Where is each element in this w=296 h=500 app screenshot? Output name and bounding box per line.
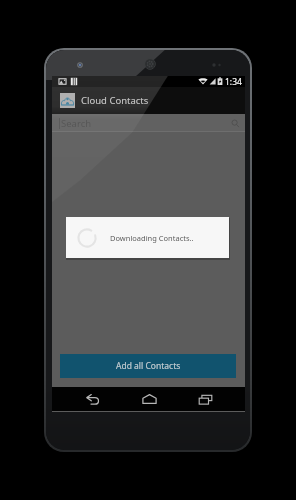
staticText: Search — [61, 117, 92, 130]
button[interactable]: Recent apps — [188, 387, 222, 411]
staticText: Add all Contacts — [116, 360, 181, 372]
button[interactable]: Add all Contacts — [60, 354, 236, 378]
button[interactable]: Back — [75, 387, 109, 411]
staticText: 1:34 — [225, 76, 242, 87]
button[interactable]: Cloud Contacts — [52, 87, 245, 114]
button[interactable]: Search — [52, 114, 245, 132]
staticText: Cloud Contacts — [81, 94, 149, 107]
staticText: Downloading Contacts.. — [110, 233, 194, 243]
button[interactable]: Home — [132, 387, 166, 411]
